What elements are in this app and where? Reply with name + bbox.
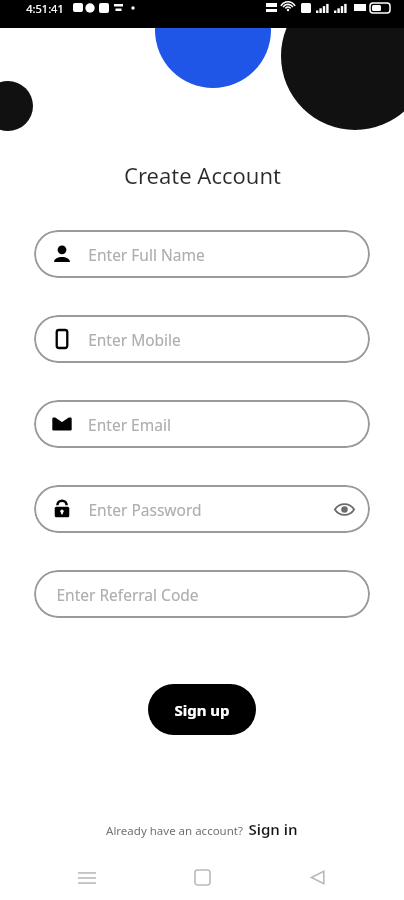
- button[interactable]: Recent apps: [59, 855, 115, 900]
- staticText: Create Account: [124, 160, 281, 190]
- staticText: Enter Full Name: [88, 244, 205, 265]
- button[interactable]: Enter Mobile: [34, 315, 370, 363]
- button[interactable]: Sign up: [148, 684, 256, 735]
- button[interactable]: Already have an account?: [106, 819, 298, 839]
- staticText: Enter Password: [88, 499, 202, 520]
- button[interactable]: Enter Referral Code: [34, 570, 370, 618]
- button[interactable]: Home: [174, 855, 230, 900]
- button[interactable]: Show password: [324, 489, 364, 529]
- staticText: Sign up: [174, 700, 230, 720]
- staticText: Enter Email: [88, 414, 171, 435]
- button[interactable]: Back: [289, 855, 345, 900]
- staticText: Enter Mobile: [88, 329, 181, 350]
- button[interactable]: Enter Password: [34, 485, 370, 533]
- staticText: 4:51:41: [26, 1, 64, 16]
- staticText: Already have an account?: [106, 823, 243, 839]
- staticText: Sign in: [248, 819, 298, 839]
- button[interactable]: Enter Email: [34, 400, 370, 448]
- staticText: Enter Referral Code: [56, 584, 199, 605]
- button[interactable]: Enter Full Name: [34, 230, 370, 278]
